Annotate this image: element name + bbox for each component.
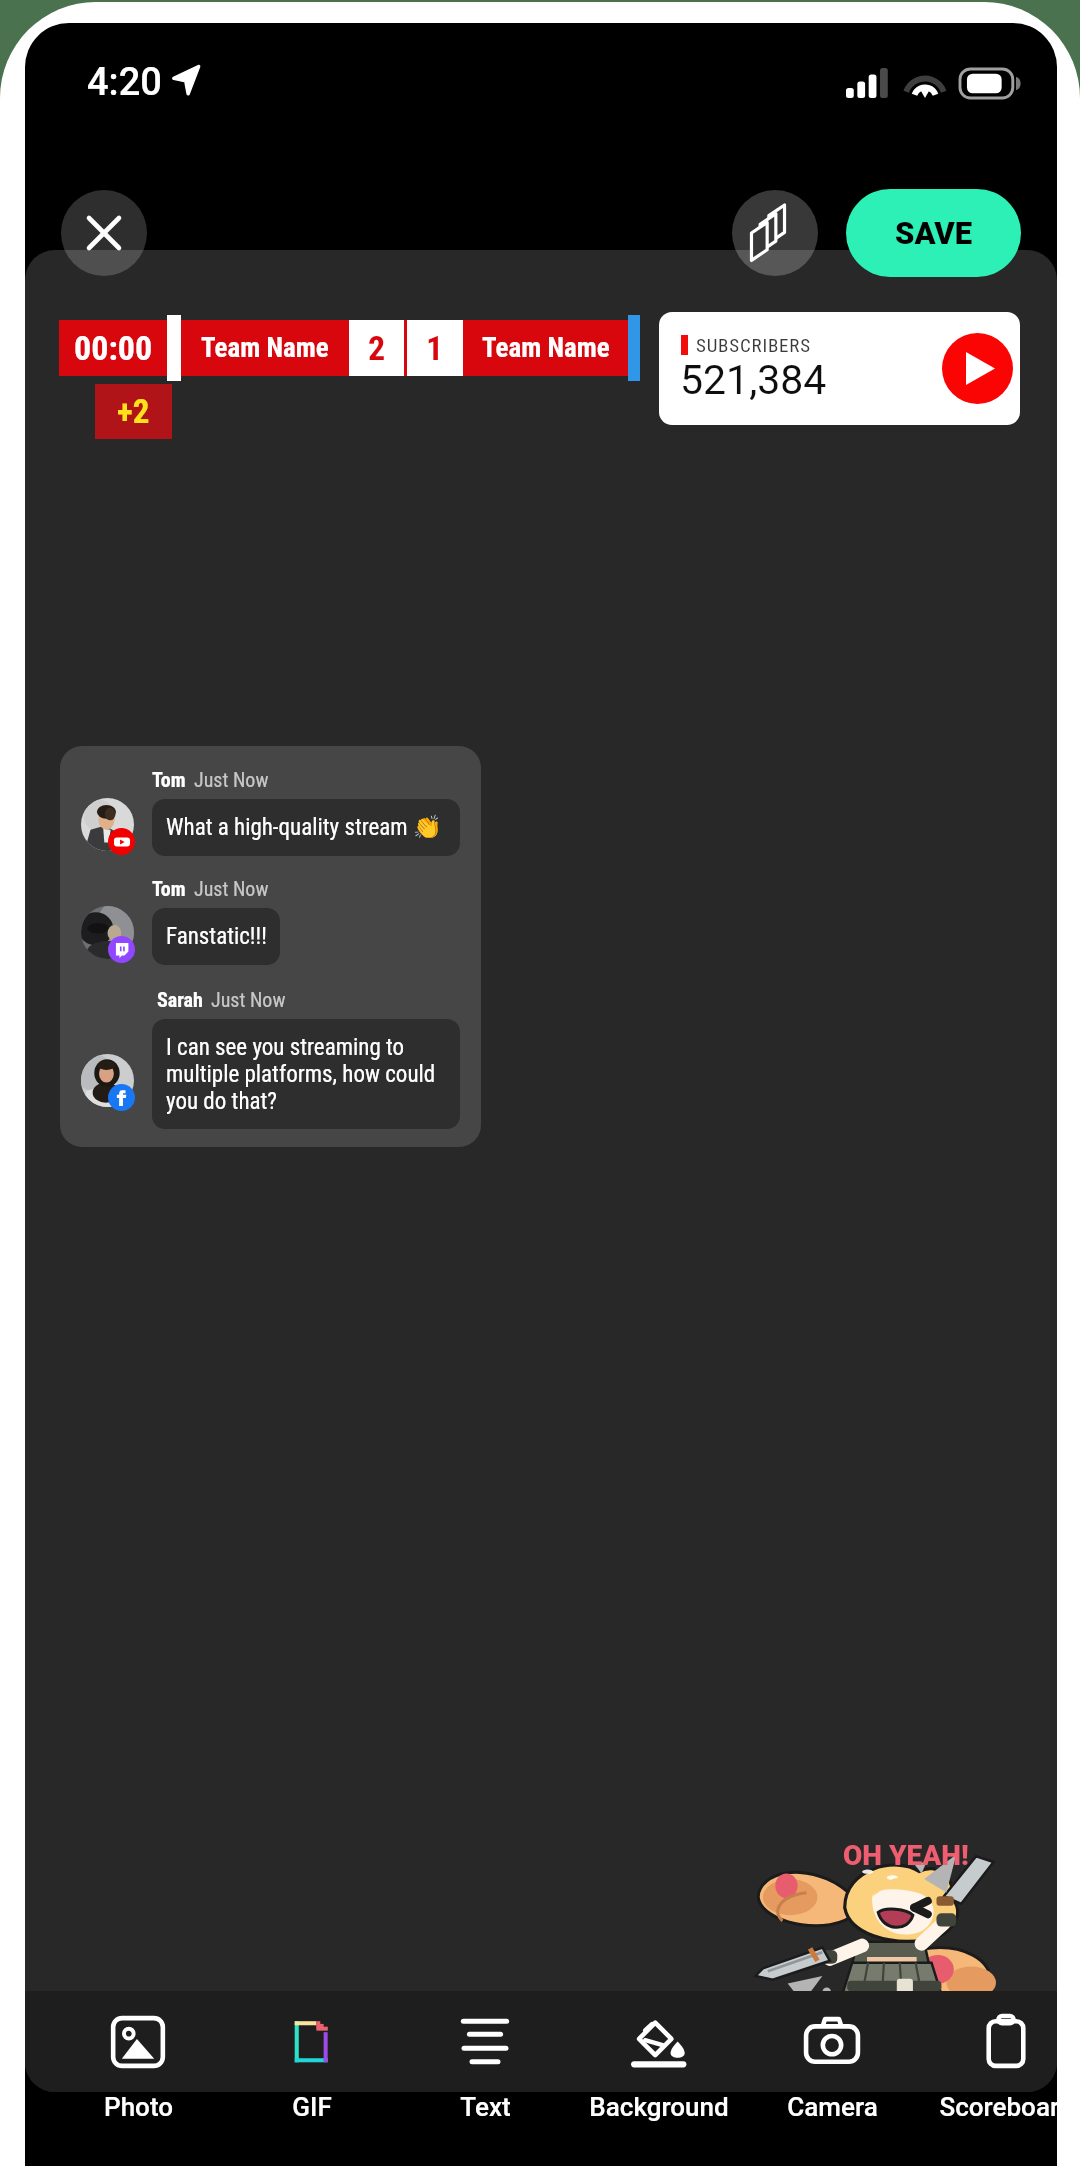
staticText: SUBSCRIBERS: [696, 334, 811, 356]
staticText: 521,384: [680, 356, 827, 404]
staticText: Camera: [787, 2092, 878, 2122]
button[interactable]: Scoreboard: [919, 2018, 1057, 2115]
staticText: 2: [368, 328, 386, 368]
button[interactable]: I can see you streaming to: [152, 1019, 460, 1129]
staticText: Fanstatic!!!: [166, 923, 266, 950]
staticText: Background: [589, 2092, 729, 2122]
staticText: Text: [460, 2092, 511, 2122]
button[interactable]: Photo: [51, 2018, 225, 2115]
staticText: Just Now: [194, 877, 269, 900]
staticText: Tom: [152, 768, 186, 791]
staticText: Team Name: [201, 332, 329, 364]
button[interactable]: Close: [61, 190, 147, 276]
staticText: GIF: [292, 2092, 332, 2122]
staticText: 4:20: [87, 60, 162, 105]
staticText: 1: [426, 328, 444, 368]
button[interactable]: Background: [572, 2018, 746, 2115]
button[interactable]: Text: [398, 2018, 572, 2115]
button[interactable]: Fanstatic!!!: [152, 908, 280, 965]
button[interactable]: Camera: [745, 2018, 919, 2115]
staticText: Scoreboard: [939, 2092, 1057, 2122]
staticText: OH YEAH!: [843, 1839, 969, 1872]
staticText: I can see you streaming to: [166, 1034, 405, 1061]
staticText: Photo: [104, 2092, 173, 2122]
staticText: What a high-quality stream 👏: [166, 814, 442, 841]
staticText: SAVE: [895, 215, 973, 251]
button[interactable]: GIF: [225, 2018, 399, 2115]
button[interactable]: Layers: [732, 190, 818, 276]
staticText: Sarah: [157, 988, 203, 1011]
button[interactable]: SAVE: [846, 189, 1021, 277]
staticText: Team Name: [482, 332, 610, 364]
staticText: Just Now: [211, 988, 286, 1011]
staticText: multiple platforms, how could: [166, 1061, 436, 1088]
staticText: 00:00: [74, 328, 153, 368]
staticText: +2: [117, 392, 150, 431]
staticText: Just Now: [194, 768, 269, 791]
button[interactable]: SUBSCRIBERS: [659, 312, 1020, 425]
staticText: you do that?: [166, 1088, 278, 1115]
staticText: Tom: [152, 877, 186, 900]
button[interactable]: What a high-quality stream 👏: [152, 799, 460, 856]
